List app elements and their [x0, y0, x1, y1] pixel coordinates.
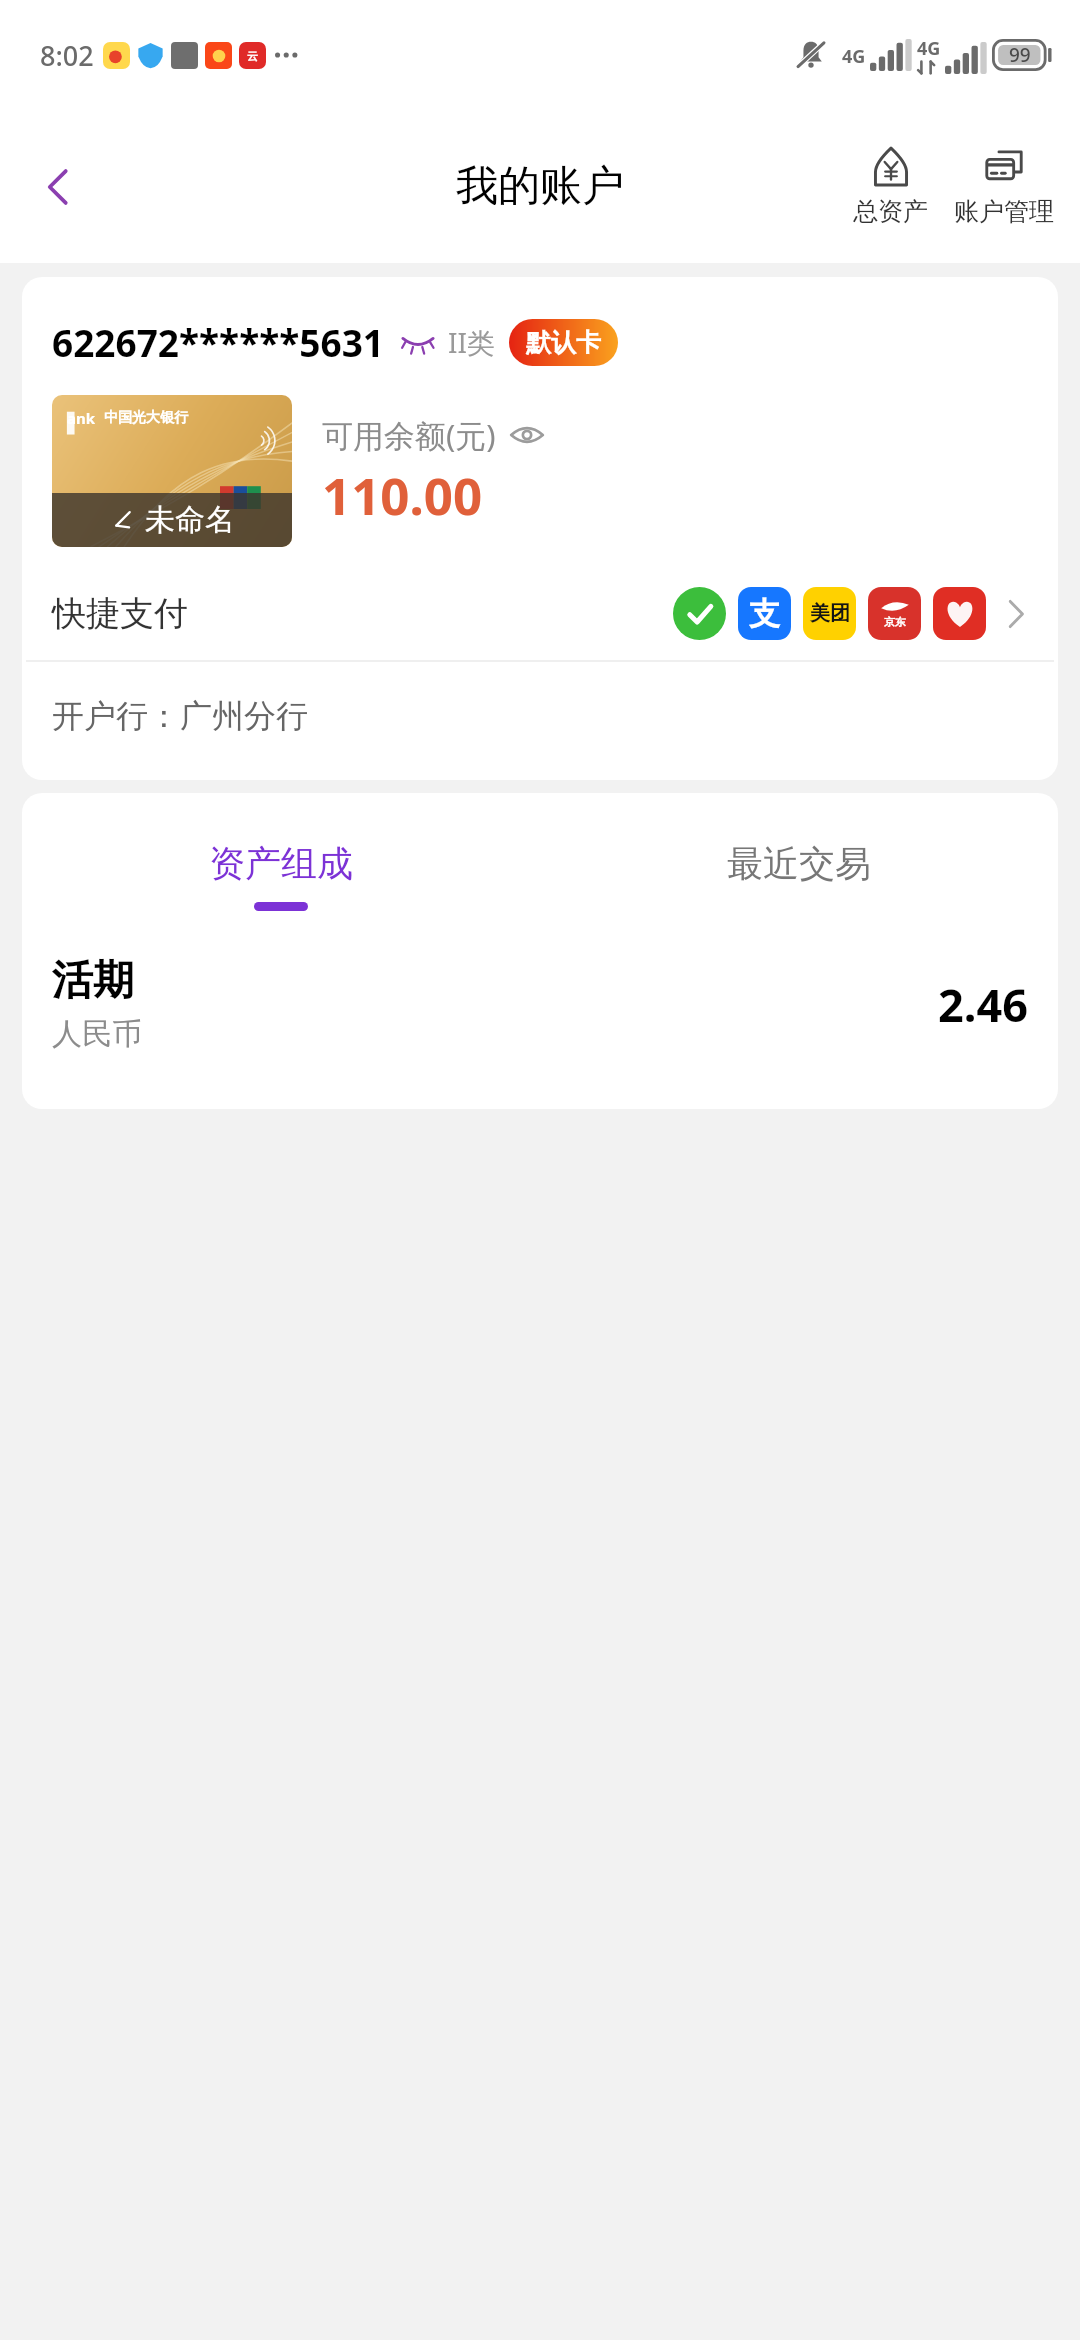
button[interactable]: Alipay: [738, 587, 791, 640]
button[interactable]: 资产组成: [183, 835, 379, 917]
button[interactable]: 开户行：广州分行: [22, 662, 1058, 780]
staticText: 资产组成: [209, 841, 353, 886]
staticText: II类: [448, 323, 495, 361]
button[interactable]: WeChat Pay: [673, 587, 726, 640]
button[interactable]: 最近交易: [701, 835, 897, 917]
staticText: 中国光大银行: [104, 409, 188, 427]
staticText: 4G: [842, 44, 866, 69]
staticText: 快捷支付: [52, 592, 188, 635]
staticText: 2.46: [938, 974, 1028, 1035]
staticText: 人民币: [52, 1015, 142, 1053]
staticText: 110.00: [322, 460, 483, 529]
button[interactable]: Hide card number: [396, 320, 440, 364]
staticText: 我的账户: [456, 160, 624, 213]
staticText: 622672******5631: [52, 317, 384, 367]
button[interactable]: 活期: [22, 951, 1058, 1063]
button[interactable]: 快捷支付: [22, 577, 1058, 656]
staticText: 总资产: [853, 196, 928, 227]
button[interactable]: 默认卡: [509, 319, 618, 366]
button[interactable]: Meituan: [803, 587, 856, 640]
staticText: 99: [1009, 42, 1031, 68]
button[interactable]: ank: [52, 395, 292, 547]
staticText: 默认卡: [526, 327, 601, 358]
staticText: 云: [247, 49, 258, 63]
staticText: 账户管理: [954, 196, 1054, 227]
staticText: 未命名: [145, 501, 235, 539]
staticText: 美团: [810, 601, 850, 626]
staticText: 最近交易: [727, 841, 871, 886]
staticText: 支: [749, 594, 780, 633]
button[interactable]: Back: [20, 148, 98, 226]
staticText: 8:02: [40, 37, 94, 74]
staticText: 活期: [52, 955, 134, 1007]
staticText: 可用余额(元): [322, 414, 496, 456]
button[interactable]: 账户管理: [946, 142, 1062, 231]
button[interactable]: JD Pay: [868, 587, 921, 640]
button[interactable]: Pinduoduo: [933, 587, 986, 640]
staticText: 开户行：广州分行: [52, 696, 308, 736]
staticText: 4G: [917, 36, 941, 61]
button[interactable]: 总资产: [845, 142, 936, 231]
staticText: ank: [67, 408, 96, 428]
button[interactable]: Toggle balance: [506, 414, 548, 456]
staticText: 京东: [884, 615, 906, 629]
